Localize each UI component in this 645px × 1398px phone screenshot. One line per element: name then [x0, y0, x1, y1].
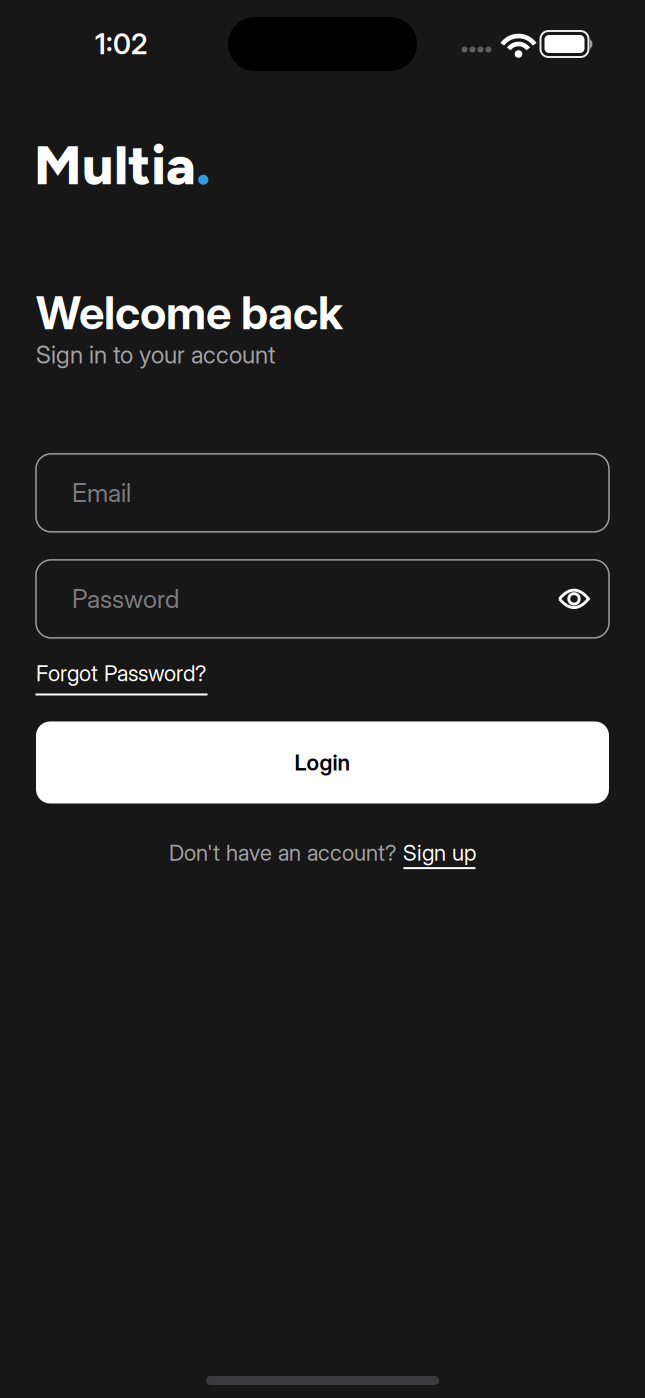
- button[interactable]: Login: [36, 721, 609, 803]
- button[interactable]: Forgot Password?: [36, 660, 207, 686]
- staticText: Multia: [34, 132, 196, 198]
- staticText: Welcome back: [36, 286, 343, 340]
- staticText: Password: [72, 584, 179, 614]
- staticText: Sign in to your account: [36, 341, 275, 369]
- button[interactable]: Email: [36, 454, 609, 532]
- button[interactable]: Sign up: [403, 839, 476, 866]
- button[interactable]: Password: [36, 560, 609, 638]
- staticText: Don't have an account?: [169, 839, 403, 866]
- staticText: Login: [294, 749, 350, 776]
- staticText: Email: [72, 478, 131, 508]
- staticText: .: [196, 132, 211, 198]
- staticText: Forgot Password?: [36, 660, 207, 686]
- button[interactable]: [558, 588, 590, 610]
- staticText: Sign up: [403, 839, 476, 866]
- staticText: 1:02: [95, 27, 147, 60]
